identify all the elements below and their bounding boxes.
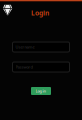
staticText: Username (15, 44, 34, 50)
button[interactable]: Password (12, 62, 69, 72)
staticText: Login (31, 9, 49, 17)
button[interactable]: Login (31, 87, 51, 95)
button[interactable]: Username (12, 42, 69, 52)
staticText: Login (35, 88, 46, 94)
staticText: Password (15, 64, 32, 70)
